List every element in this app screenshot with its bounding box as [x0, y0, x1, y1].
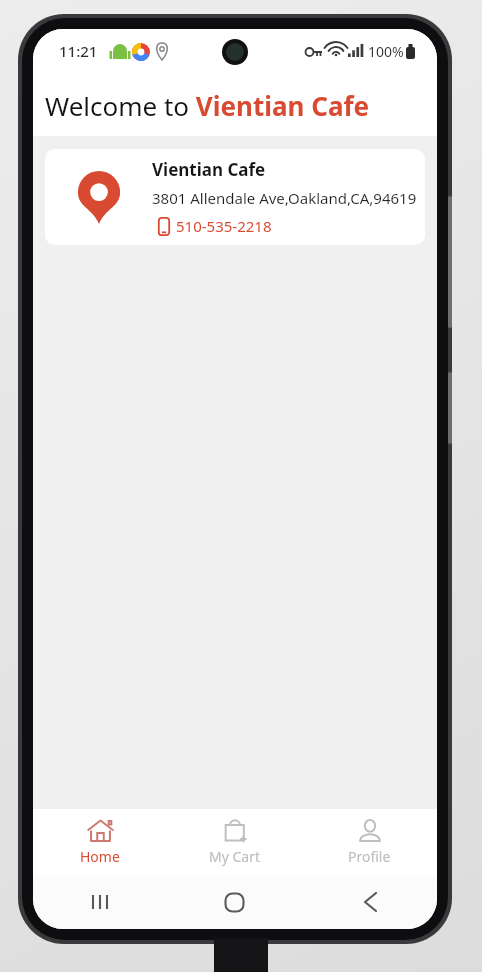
- button[interactable]: My Cart: [167, 809, 302, 875]
- button[interactable]: Profile: [302, 809, 437, 875]
- button[interactable]: Recent apps: [33, 875, 167, 929]
- staticText: Vientian Cafe: [152, 158, 266, 181]
- staticText: 100%: [368, 42, 404, 61]
- button[interactable]: 510-535-2218: [158, 216, 272, 236]
- staticText: 510-535-2218: [176, 216, 272, 236]
- button[interactable]: Home: [167, 875, 302, 929]
- button[interactable]: Vientian Cafe: [45, 149, 425, 245]
- staticText: 3801 Allendale Ave,Oakland,CA,94619: [152, 188, 417, 208]
- staticText: Profile: [348, 847, 391, 866]
- staticText: 11:21: [59, 41, 98, 61]
- staticText: Welcome to Vientian Cafe: [45, 88, 370, 123]
- staticText: My Cart: [209, 847, 261, 866]
- button[interactable]: Home: [33, 809, 167, 875]
- button[interactable]: Back: [302, 875, 437, 929]
- staticText: Home: [80, 847, 120, 866]
